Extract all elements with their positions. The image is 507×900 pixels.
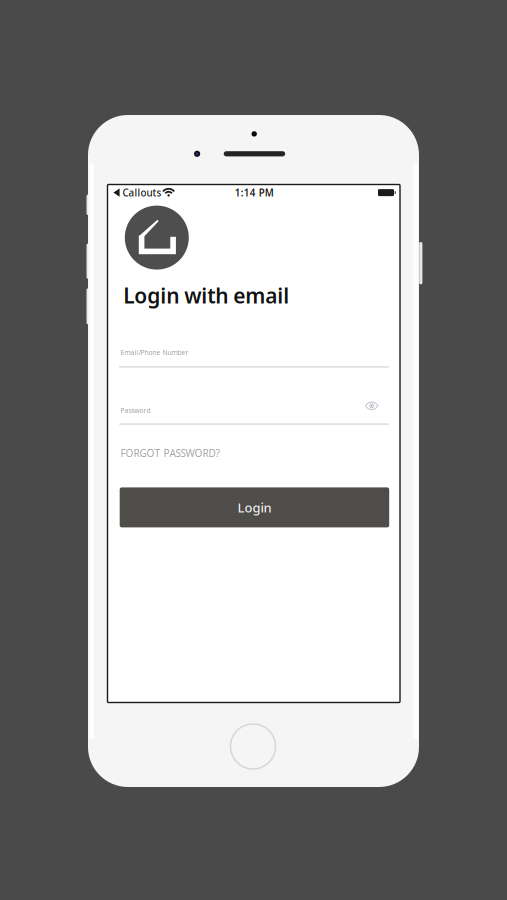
button[interactable]: Show password [361, 396, 383, 416]
staticText: 1:14 PM [235, 186, 274, 199]
staticText: Login [237, 499, 271, 516]
staticText: Login with email [123, 281, 289, 309]
staticText: FORGOT PASSWORD? [120, 446, 219, 460]
button[interactable]: Login [120, 487, 389, 527]
button[interactable]: FORGOT PASSWORD? [120, 447, 224, 459]
staticText: Callouts [123, 186, 162, 199]
staticText: Password [120, 406, 150, 415]
button[interactable]: Callouts [113, 188, 166, 198]
staticText: Email/Phone Number [120, 348, 188, 357]
